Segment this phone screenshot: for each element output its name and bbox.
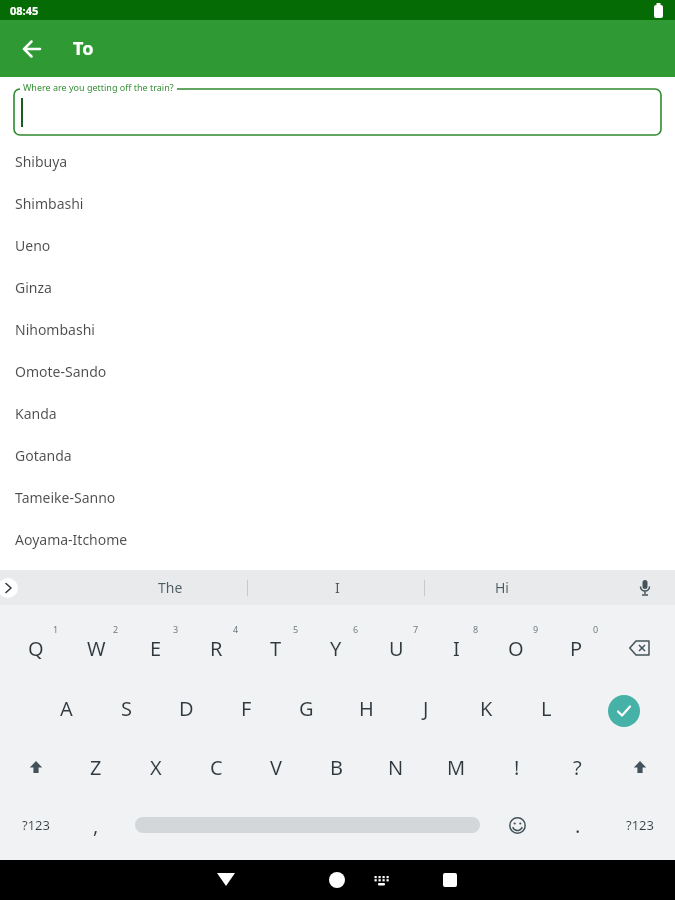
button[interactable] (0, 578, 18, 598)
button[interactable]: Aoyama-Itchome (0, 518, 675, 560)
button[interactable]: K (458, 685, 514, 731)
button[interactable]: G (278, 685, 334, 731)
button[interactable]: . (550, 802, 606, 848)
staticText: E (150, 635, 162, 662)
button[interactable]: T (248, 625, 304, 671)
staticText: P (570, 635, 583, 662)
button[interactable]: Q (8, 625, 64, 671)
button[interactable] (12, 744, 60, 790)
button[interactable]: Ginza (0, 266, 675, 308)
button[interactable]: Shimbashi (0, 182, 675, 224)
button[interactable]: Gotanda (0, 434, 675, 476)
staticText: C (210, 754, 223, 781)
staticText: 3 (173, 623, 179, 635)
staticText: The (158, 578, 183, 597)
staticText: A (60, 695, 73, 722)
staticText: M (447, 754, 466, 781)
staticText: D (179, 695, 194, 722)
staticText: Z (90, 754, 102, 781)
button[interactable]: V (248, 744, 304, 790)
staticText: Q (28, 635, 44, 662)
staticText: K (480, 695, 493, 722)
button[interactable]: I (428, 625, 484, 671)
staticText: Shibuya (15, 152, 68, 171)
staticText: ?123 (22, 816, 50, 834)
button[interactable]: U (368, 625, 424, 671)
button[interactable]: F (218, 685, 274, 731)
staticText: Ueno (15, 236, 51, 255)
button[interactable]: Kanda (0, 392, 675, 434)
button[interactable]: Tameike-Sanno (0, 476, 675, 518)
button[interactable]: ?123 (8, 802, 64, 848)
staticText: V (270, 754, 282, 781)
staticText: L (541, 695, 552, 722)
button[interactable]: L (518, 685, 574, 731)
button[interactable]: N (368, 744, 424, 790)
staticText: T (270, 635, 282, 662)
button[interactable]: ?123 (612, 802, 668, 848)
button[interactable] (14, 31, 50, 67)
staticText: H (359, 695, 374, 722)
button[interactable]: S (98, 685, 154, 731)
button[interactable] (367, 866, 395, 894)
staticText: Nihombashi (15, 320, 95, 339)
staticText: J (423, 695, 429, 722)
button[interactable]: Z (68, 744, 124, 790)
button[interactable]: Ueno (0, 224, 675, 266)
staticText: ! (514, 754, 520, 781)
button[interactable]: , (68, 802, 124, 848)
button[interactable]: X (128, 744, 184, 790)
staticText: N (388, 754, 404, 781)
staticText: ? (573, 754, 582, 781)
button[interactable]: Y (308, 625, 364, 671)
button[interactable] (608, 695, 640, 727)
button[interactable]: Where are you getting off the train? (14, 89, 661, 135)
button[interactable]: A (38, 685, 94, 731)
staticText: W (87, 635, 106, 662)
staticText: G (299, 695, 314, 722)
button[interactable] (430, 860, 470, 900)
staticText: Hi (495, 578, 509, 597)
staticText: S (121, 695, 132, 722)
button[interactable]: M (428, 744, 484, 790)
button[interactable] (616, 744, 664, 790)
button[interactable]: ? (549, 744, 605, 790)
button[interactable] (206, 860, 246, 900)
button[interactable] (612, 625, 668, 671)
staticText: Kanda (15, 404, 57, 423)
staticText: 8 (473, 623, 479, 635)
staticText: 7 (413, 623, 419, 635)
button[interactable]: H (338, 685, 394, 731)
button[interactable]: I (277, 570, 397, 605)
button[interactable] (493, 802, 541, 848)
staticText: To (73, 36, 94, 61)
button[interactable]: D (158, 685, 214, 731)
staticText: Shimbashi (15, 194, 84, 213)
staticText: 1 (53, 623, 59, 635)
button[interactable]: J (398, 685, 454, 731)
button[interactable]: P (548, 625, 604, 671)
button[interactable] (317, 860, 357, 900)
button[interactable]: E (128, 625, 184, 671)
button[interactable]: ! (489, 744, 545, 790)
staticText: 2 (113, 623, 119, 635)
button[interactable]: Hi (442, 570, 562, 605)
staticText: , (93, 812, 99, 839)
button[interactable]: The (110, 570, 230, 605)
staticText: . (575, 812, 581, 839)
staticText: Ginza (15, 278, 52, 297)
button[interactable]: R (188, 625, 244, 671)
button[interactable]: Nihombashi (0, 308, 675, 350)
button[interactable]: Omote-Sando (0, 350, 675, 392)
button[interactable]: Shibuya (0, 140, 675, 182)
staticText: Where are you getting off the train? (23, 81, 174, 93)
button[interactable] (630, 573, 660, 603)
staticText: 08:45 (10, 3, 39, 18)
button[interactable]: W (68, 625, 124, 671)
button[interactable]: C (188, 744, 244, 790)
button[interactable]: B (308, 744, 364, 790)
staticText: R (210, 635, 223, 662)
staticText: Tameike-Sanno (15, 488, 116, 507)
button[interactable]: O (488, 625, 544, 671)
